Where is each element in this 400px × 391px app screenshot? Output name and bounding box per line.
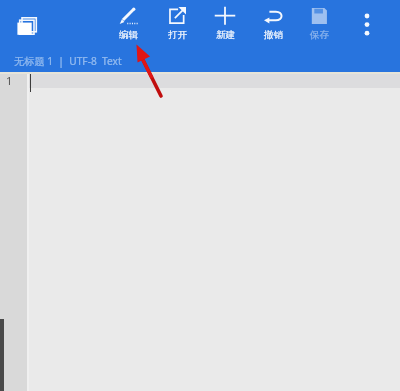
- button[interactable]: Open: [154, 2, 200, 46]
- staticText: 新建: [216, 29, 235, 41]
- button[interactable]: New: [202, 2, 248, 46]
- staticText: 保存: [310, 29, 329, 41]
- staticText: 无标题 1 | UTF-8 Text: [14, 54, 122, 68]
- button[interactable]: Save: [296, 2, 342, 46]
- staticText: 打开: [168, 29, 187, 41]
- button[interactable]: Edit: [105, 2, 151, 46]
- button[interactable]: Undo: [250, 2, 296, 46]
- button[interactable]: More options: [352, 4, 383, 46]
- staticText: 编辑: [119, 29, 138, 41]
- button[interactable]: Tabs: [12, 10, 44, 40]
- staticText: 撤销: [264, 29, 283, 41]
- staticText: 1: [6, 73, 13, 88]
